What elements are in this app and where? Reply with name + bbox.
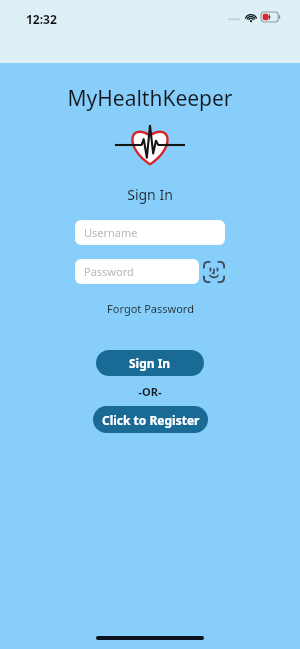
- staticText: Password: [84, 264, 134, 279]
- button[interactable]: Face ID sign in: [203, 261, 225, 283]
- button[interactable]: Username: [75, 220, 225, 245]
- staticText: -OR-: [0, 384, 300, 399]
- staticText: Sign In: [129, 355, 171, 371]
- staticText: MyHealthKeeper: [0, 84, 300, 113]
- button[interactable]: Click to Register: [93, 406, 208, 433]
- button[interactable]: Sign In: [96, 350, 204, 376]
- button[interactable]: Password: [75, 259, 199, 284]
- staticText: Click to Register: [102, 412, 200, 428]
- staticText: 12:32: [26, 11, 57, 27]
- button[interactable]: Forgot Password: [0, 301, 300, 316]
- staticText: Forgot Password: [107, 301, 194, 316]
- staticText: Username: [84, 225, 138, 240]
- staticText: Sign In: [0, 185, 300, 204]
